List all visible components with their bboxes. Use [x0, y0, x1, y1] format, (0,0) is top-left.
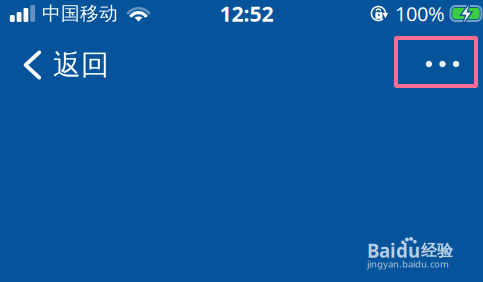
staticText: 返回: [53, 48, 109, 82]
button[interactable]: More: [396, 38, 476, 86]
staticText: jingyan.baidu.com: [367, 258, 449, 270]
button[interactable]: 返回: [0, 28, 117, 84]
staticText: Bai: [367, 238, 396, 263]
staticText: 12:52: [219, 0, 273, 28]
staticText: 100%: [395, 0, 445, 27]
staticText: 经验: [421, 241, 453, 260]
staticText: du: [396, 238, 420, 263]
staticText: 中国移动: [42, 2, 118, 25]
